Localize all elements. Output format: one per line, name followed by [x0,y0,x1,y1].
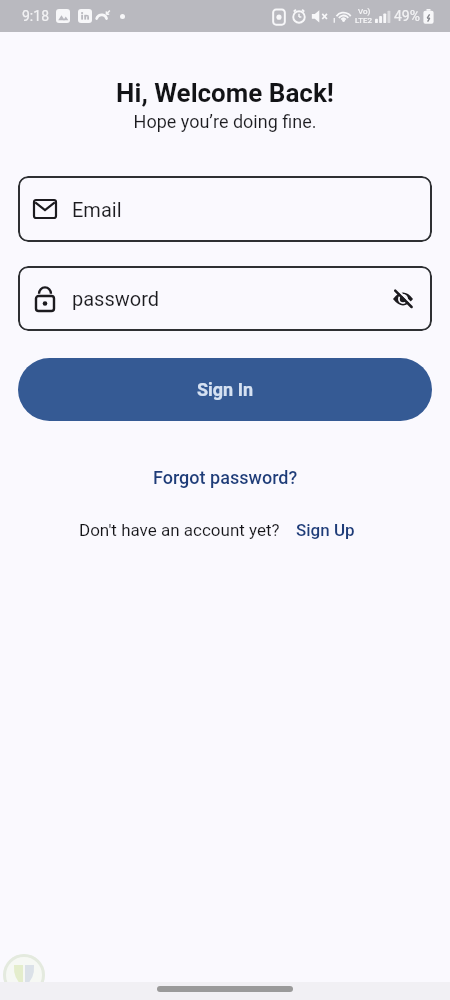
staticText: 9:18 [22,8,49,24]
button[interactable]: Email [18,176,432,242]
button[interactable]: password [18,266,432,331]
staticText: Hi, Welcome Back! [0,78,450,108]
staticText: Hope you’re doing fine. [0,111,450,132]
button[interactable] [392,288,414,310]
button[interactable]: Sign Up [296,520,355,540]
staticText: Sign In [197,379,254,400]
staticText: password [72,287,160,310]
staticText: 49% [394,8,420,24]
staticText: LTE2 [355,16,373,25]
staticText: Forgot password? [153,467,298,488]
staticText: Vo) [358,7,371,16]
button[interactable]: Forgot password? [153,467,298,488]
staticText: Email [72,198,122,221]
button[interactable]: Sign In [18,358,432,421]
staticText: Sign Up [296,520,355,540]
staticText: Don't have an account yet? [79,520,280,540]
